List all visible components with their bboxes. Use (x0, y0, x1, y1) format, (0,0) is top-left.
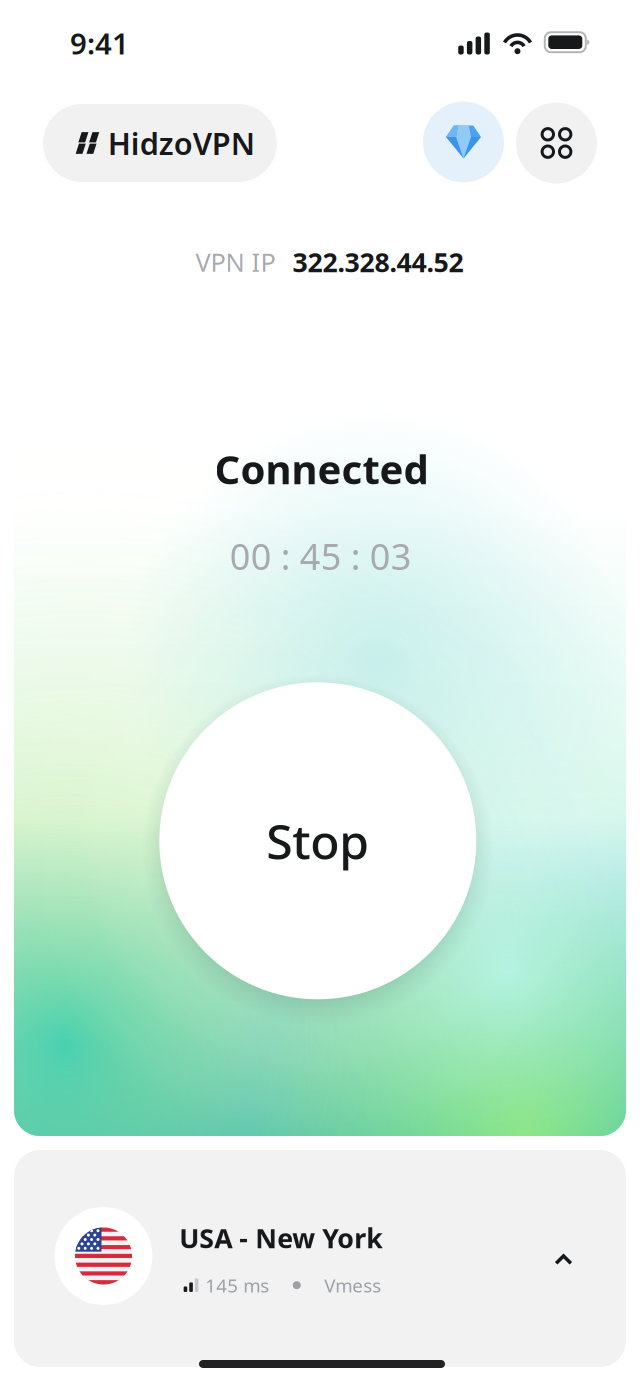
staticText: VPN IP (195, 245, 275, 279)
staticText: 9:41 (70, 23, 129, 62)
staticText: 145 ms (205, 1273, 269, 1298)
button[interactable]: Menu (516, 102, 597, 183)
staticText: HidzoVPN (108, 123, 255, 163)
staticText: Vmess (324, 1273, 381, 1298)
button[interactable]: Premium (423, 101, 504, 182)
staticText: USA - New York (179, 1220, 383, 1256)
button[interactable]: USA - New York (14, 1150, 626, 1367)
staticText: 322.328.44.52 (292, 244, 463, 280)
staticText: 00 : 45 : 03 (230, 532, 412, 580)
button[interactable]: Stop (158, 682, 477, 999)
button[interactable]: HidzoVPN (43, 104, 277, 182)
staticText: Connected (215, 442, 429, 495)
staticText: Stop (266, 809, 369, 873)
